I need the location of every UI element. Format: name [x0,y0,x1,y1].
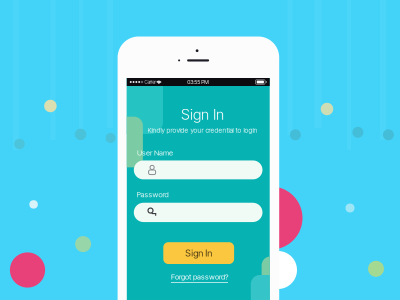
staticText: Password [137,190,169,199]
button[interactable]: Sign In [163,242,234,264]
button[interactable]: Forgot password? [169,272,229,283]
staticText: User Name [137,148,173,157]
staticText: 03:55 PM [187,79,209,85]
staticText: Sign In [185,247,212,259]
staticText: Sign In [181,106,224,123]
staticText: Forgot password? [171,272,228,281]
staticText: Kindly provide your credential to login [147,126,257,134]
staticText: Carrier [144,79,155,85]
